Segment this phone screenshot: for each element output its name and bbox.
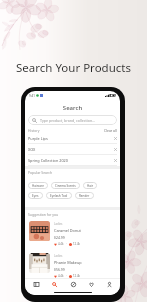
staticText: History: [28, 128, 40, 133]
staticText: Eyelash Tool: [50, 194, 68, 198]
button[interactable]: Eyes: [28, 192, 43, 199]
staticText: ·: [66, 274, 67, 278]
button[interactable]: Hair: [83, 182, 97, 189]
button[interactable]: Purple Lips: [28, 133, 117, 143]
button[interactable]: Eyelash Tool: [46, 192, 72, 199]
staticText: Popular Search: [28, 170, 53, 175]
staticText: XOX: [28, 147, 36, 152]
button[interactable]: Clear all: [104, 128, 117, 133]
staticText: 9:41: [29, 94, 35, 98]
staticText: Purple Lips: [28, 136, 48, 141]
button[interactable]: XOX: [28, 144, 117, 154]
staticText: Suggestion for you: [28, 212, 59, 217]
staticText: 4.4k: [58, 242, 64, 246]
button[interactable]: Haircare: [28, 182, 48, 189]
staticText: Search Your Products: [16, 60, 131, 76]
button[interactable]: Cinema Scents: [51, 182, 80, 189]
staticText: Eyes: [32, 194, 39, 198]
staticText: Spring Collection 2020: [28, 158, 68, 163]
button[interactable]: Type product, brand, collection...: [28, 115, 117, 125]
button[interactable]: Home: [29, 279, 43, 290]
staticText: Search: [25, 104, 120, 112]
staticText: Ladies: [54, 254, 63, 258]
button[interactable]: Ladies: [29, 253, 116, 278]
staticText: 12.4k: [73, 242, 81, 246]
button[interactable]: Search: [47, 279, 61, 290]
staticText: 4.4k: [58, 274, 64, 278]
staticText: Render: [79, 194, 90, 198]
button[interactable]: Favourites: [84, 279, 98, 290]
staticText: Caramel Donut: [54, 228, 81, 233]
staticText: Cinema Scents: [55, 184, 76, 188]
staticText: Hair: [87, 184, 93, 188]
staticText: Type product, brand, collection...: [40, 118, 96, 123]
button[interactable]: Ladies: [29, 221, 116, 246]
staticText: $56.99: [54, 267, 65, 272]
button[interactable]: Profile: [102, 279, 116, 290]
staticText: ·: [66, 242, 67, 246]
staticText: Ladies: [54, 222, 63, 226]
button[interactable]: Offers: [66, 279, 80, 290]
button[interactable]: Spring Collection 2020: [28, 155, 117, 165]
staticText: Haircare: [32, 184, 44, 188]
staticText: $24.99: [54, 235, 65, 240]
button[interactable]: Render: [75, 192, 94, 199]
staticText: 12.4k: [73, 274, 81, 278]
staticText: Phanie Makeup: [54, 260, 82, 265]
